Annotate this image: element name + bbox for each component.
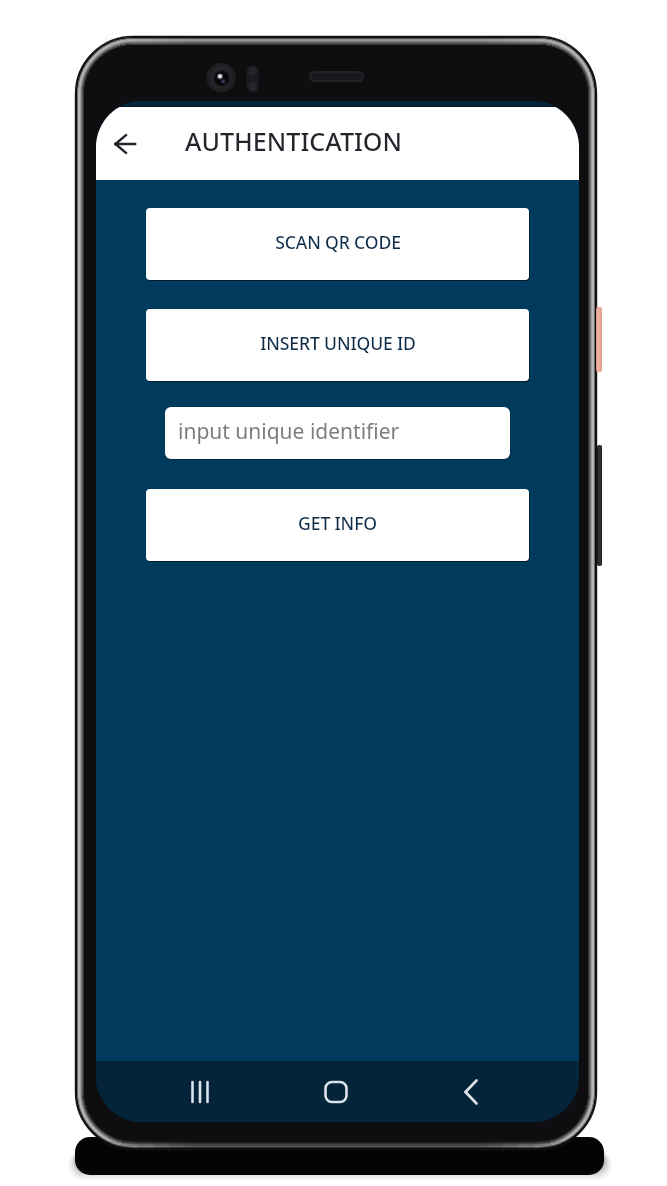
staticText: input unique identifier [178,417,400,446]
button[interactable]: INSERT UNIQUE ID [146,309,529,381]
staticText: GET INFO [298,511,377,535]
staticText: SCAN QR CODE [275,230,401,254]
button[interactable]: Back [104,122,148,166]
button[interactable]: Back [441,1061,501,1122]
staticText: AUTHENTICATION [185,124,403,158]
button[interactable]: GET INFO [146,489,529,561]
button[interactable]: SCAN QR CODE [146,208,529,280]
staticText: INSERT UNIQUE ID [260,331,416,355]
button[interactable]: input unique identifier [165,407,510,459]
button[interactable]: Home [306,1061,366,1122]
button[interactable]: Recent apps [170,1061,230,1122]
